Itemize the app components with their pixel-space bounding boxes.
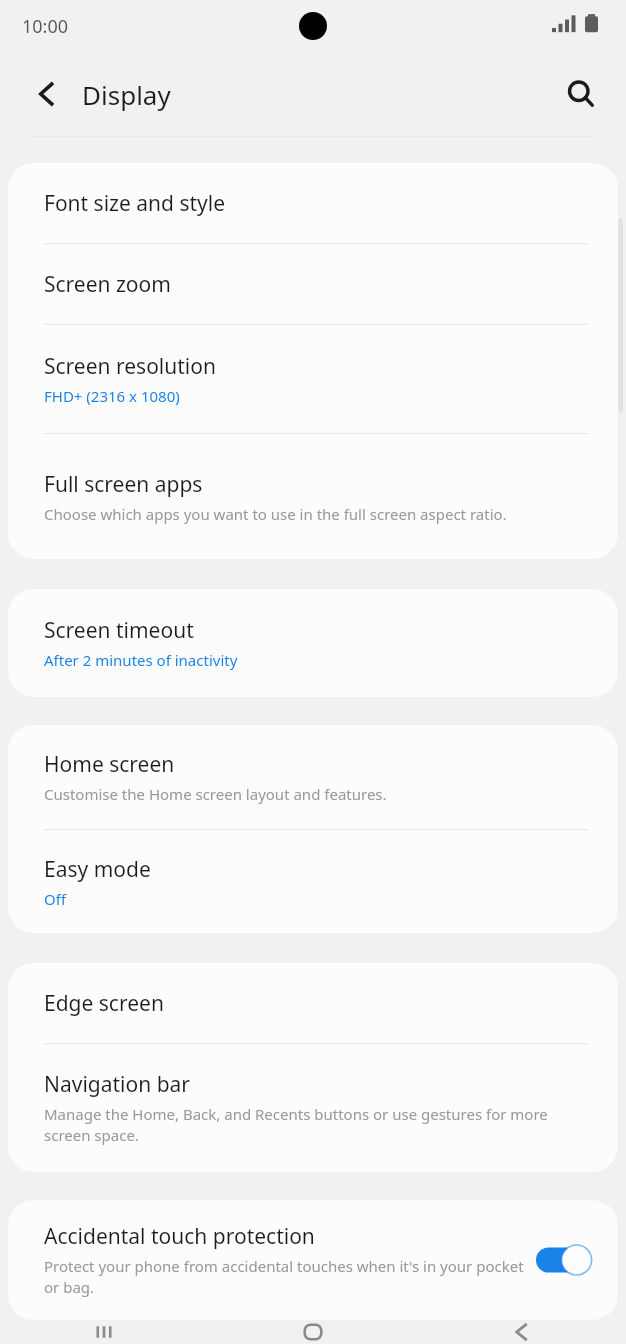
button[interactable]: Home (208, 1320, 417, 1344)
button[interactable]: Screen timeout (8, 589, 618, 697)
staticText: Protect your phone from accidental touch… (44, 1256, 528, 1298)
button[interactable]: Font size and style (8, 163, 618, 243)
staticText: Accidental touch protection (44, 1222, 315, 1251)
staticText: Display (82, 77, 171, 112)
staticText: Screen zoom (44, 270, 171, 299)
button[interactable]: Search (552, 65, 610, 123)
button[interactable]: Back (417, 1320, 626, 1344)
button[interactable]: Easy mode (8, 830, 618, 933)
staticText: FHD+ (2316 x 1080) (44, 386, 180, 406)
button[interactable]: Screen resolution (8, 325, 618, 433)
staticText: Edge screen (44, 989, 164, 1018)
staticText: Manage the Home, Back, and Recents butto… (44, 1104, 594, 1146)
staticText: 10:00 (22, 14, 69, 39)
staticText: Easy mode (44, 855, 151, 884)
staticText: Full screen apps (44, 470, 203, 499)
button[interactable]: Screen zoom (8, 244, 618, 324)
button[interactable]: Accidental touch protection (8, 1200, 618, 1320)
staticText: Screen resolution (44, 352, 216, 381)
button[interactable]: Home screen (8, 725, 618, 829)
staticText: Customise the Home screen layout and fea… (44, 784, 387, 804)
button[interactable]: Back (18, 65, 76, 123)
staticText: Navigation bar (44, 1070, 191, 1099)
button[interactable]: Edge screen (8, 963, 618, 1043)
staticText: After 2 minutes of inactivity (44, 650, 238, 670)
staticText: Font size and style (44, 189, 226, 218)
button[interactable]: Full screen apps (8, 434, 618, 559)
button[interactable]: Accidental touch protection toggle (536, 1245, 594, 1275)
staticText: Off (44, 889, 67, 909)
button[interactable]: Recents (0, 1320, 208, 1344)
staticText: Screen timeout (44, 616, 194, 645)
staticText: Home screen (44, 750, 175, 779)
staticText: Choose which apps you want to use in the… (44, 504, 507, 524)
button[interactable]: Navigation bar (8, 1044, 618, 1172)
